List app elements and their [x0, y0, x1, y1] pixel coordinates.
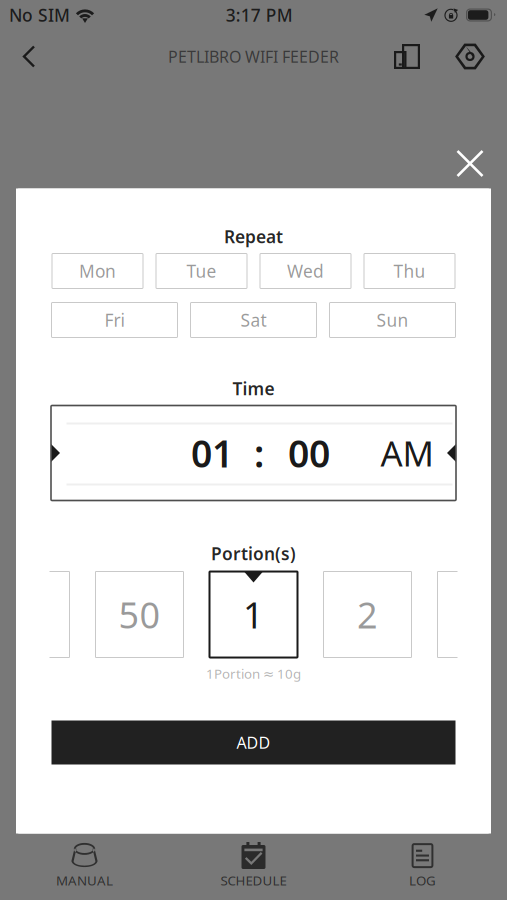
staticText: ADD: [236, 732, 270, 753]
staticText: Sat: [240, 308, 266, 331]
staticText: 1: [243, 591, 264, 638]
staticText: MANUAL: [56, 871, 113, 889]
staticText: Wed: [287, 259, 324, 282]
button[interactable]: Devices: [385, 32, 429, 80]
button[interactable]: Settings: [448, 32, 492, 80]
staticText: Repeat: [224, 225, 283, 248]
staticText: 2: [357, 591, 378, 638]
staticText: AM: [380, 430, 433, 476]
button[interactable]: Back: [8, 32, 50, 80]
button[interactable]: 50: [95, 571, 183, 657]
button[interactable]: MANUAL: [0, 833, 169, 900]
button[interactable]: 1: [209, 571, 297, 657]
button[interactable]: Fri: [51, 302, 177, 337]
button[interactable]: Wed: [260, 253, 351, 288]
staticText: PETLIBRO WIFI FEEDER: [168, 46, 339, 67]
staticText: Thu: [393, 259, 425, 282]
staticText: LOG: [409, 871, 436, 889]
staticText: 3:17 PM: [226, 3, 293, 26]
staticText: SCHEDULE: [220, 871, 286, 889]
button[interactable]: 2: [323, 571, 411, 657]
staticText: Sun: [376, 308, 408, 331]
button[interactable]: SCHEDULE: [169, 833, 338, 900]
staticText: Time: [232, 377, 274, 400]
button[interactable]: Sat: [190, 302, 316, 337]
button[interactable]: Mon: [52, 253, 143, 288]
button[interactable]: Close: [449, 142, 491, 184]
staticText: 50: [118, 591, 160, 638]
button[interactable]: ADD: [51, 720, 455, 764]
staticText: Portion(s): [211, 542, 296, 565]
staticText: Mon: [79, 259, 116, 282]
button[interactable]: [437, 571, 507, 657]
staticText: 1Portion ≈ 10g: [206, 665, 301, 682]
button[interactable]: LOG: [338, 833, 507, 900]
staticText: :: [254, 428, 264, 478]
staticText: 00: [288, 428, 330, 478]
staticText: Tue: [186, 259, 216, 282]
staticText: No SIM: [9, 3, 70, 26]
button[interactable]: Sun: [329, 302, 455, 337]
button[interactable]: Tue: [156, 253, 247, 288]
button[interactable]: Thu: [364, 253, 455, 288]
staticText: Fri: [104, 308, 124, 331]
staticText: 01: [191, 428, 233, 478]
button[interactable]: [0, 571, 69, 657]
